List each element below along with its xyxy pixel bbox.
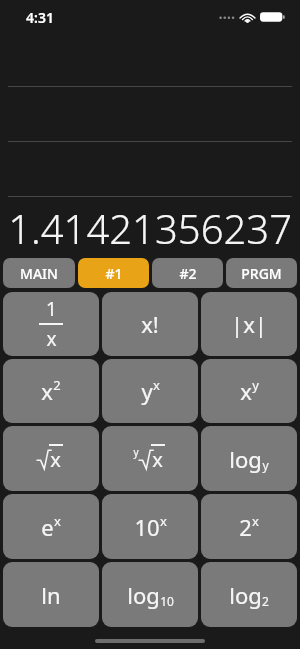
staticText: x: [153, 376, 160, 394]
staticText: x: [240, 376, 252, 406]
staticText: x: [152, 446, 163, 473]
staticText: x: [54, 512, 61, 530]
staticText: |x|: [231, 309, 267, 339]
button[interactable]: e to the x: [3, 494, 99, 559]
staticText: x: [252, 512, 259, 530]
staticText: 2: [262, 593, 269, 609]
staticText: 2: [53, 376, 61, 394]
staticText: MAIN: [20, 264, 58, 283]
staticText: PRGM: [241, 264, 282, 283]
staticText: log: [229, 444, 262, 474]
staticText: 4:31: [26, 8, 54, 27]
staticText: y: [141, 376, 153, 406]
button[interactable]: absolute value of x: [201, 292, 297, 356]
button[interactable]: #1: [78, 258, 149, 288]
staticText: x: [41, 376, 53, 406]
staticText: 1: [46, 296, 57, 322]
staticText: y: [252, 376, 259, 394]
staticText: log: [127, 580, 160, 610]
staticText: x: [50, 446, 61, 473]
staticText: 10: [134, 512, 160, 542]
button[interactable]: square root of x: [3, 426, 99, 491]
staticText: ln: [41, 580, 61, 610]
staticText: x!: [141, 309, 159, 339]
staticText: log: [229, 580, 262, 610]
button[interactable]: y-th root of x: [102, 426, 198, 491]
staticText: #2: [179, 264, 197, 283]
staticText: 10: [160, 593, 174, 609]
button[interactable]: #2: [152, 258, 223, 288]
button[interactable]: natural log: [3, 562, 99, 627]
button[interactable]: x factorial: [102, 292, 198, 356]
staticText: 1.41421356237: [8, 201, 292, 255]
button[interactable]: one over x: [3, 292, 99, 356]
button[interactable]: two to the x: [201, 494, 297, 559]
button[interactable]: log base two: [201, 562, 297, 627]
staticText: 2: [239, 512, 252, 542]
button[interactable]: MAIN: [3, 258, 75, 288]
button[interactable]: PRGM: [226, 258, 297, 288]
button[interactable]: log base y: [201, 426, 297, 491]
staticText: x: [160, 512, 167, 530]
staticText: y: [262, 457, 269, 473]
staticText: #1: [105, 264, 123, 283]
staticText: x: [46, 326, 57, 352]
button[interactable]: x to the y: [201, 359, 297, 423]
button[interactable]: y to the x: [102, 359, 198, 423]
button[interactable]: x squared: [3, 359, 99, 423]
button[interactable]: ten to the x: [102, 494, 198, 559]
staticText: e: [41, 512, 54, 542]
button[interactable]: log base ten: [102, 562, 198, 627]
staticText: y: [133, 445, 139, 459]
